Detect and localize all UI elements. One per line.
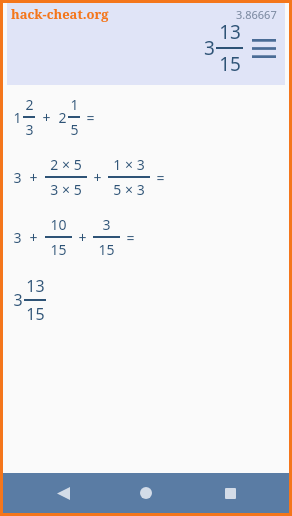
staticText: 13 <box>26 275 45 297</box>
staticText: = <box>126 228 135 247</box>
staticText: 15 <box>219 51 241 77</box>
staticText: 3.86667 <box>236 7 277 22</box>
staticText: 5 × 3 <box>113 180 145 199</box>
staticText: 3 <box>25 120 34 139</box>
staticText: + <box>78 228 87 247</box>
button[interactable]: Back <box>39 473 87 513</box>
staticText: 3 <box>13 228 22 247</box>
staticText: 1 <box>70 95 79 114</box>
staticText: 3 <box>102 215 111 234</box>
button[interactable]: Menu <box>251 35 277 61</box>
staticText: 3 <box>13 168 22 187</box>
staticText: 1 <box>13 108 22 127</box>
staticText: + <box>42 108 51 127</box>
staticText: 15 <box>26 303 45 325</box>
staticText: 3 <box>204 35 215 61</box>
staticText: + <box>93 168 102 187</box>
staticText: + <box>29 228 38 247</box>
staticText: 2 <box>58 108 67 127</box>
staticText: 13 <box>219 19 241 45</box>
staticText: 15 <box>98 240 115 259</box>
staticText: 2 <box>25 95 34 114</box>
button[interactable]: Recent apps <box>206 473 254 513</box>
staticText: = <box>156 168 165 187</box>
staticText: 1 × 3 <box>113 155 145 174</box>
staticText: 15 <box>50 240 67 259</box>
staticText: 3 × 5 <box>50 180 82 199</box>
button[interactable]: Home <box>122 473 170 513</box>
staticText: 2 × 5 <box>50 155 82 174</box>
staticText: = <box>86 108 95 127</box>
staticText: + <box>29 168 38 187</box>
staticText: hack-cheat.org <box>11 5 109 23</box>
staticText: 10 <box>50 215 67 234</box>
staticText: 5 <box>70 120 79 139</box>
staticText: 3 <box>13 289 23 311</box>
